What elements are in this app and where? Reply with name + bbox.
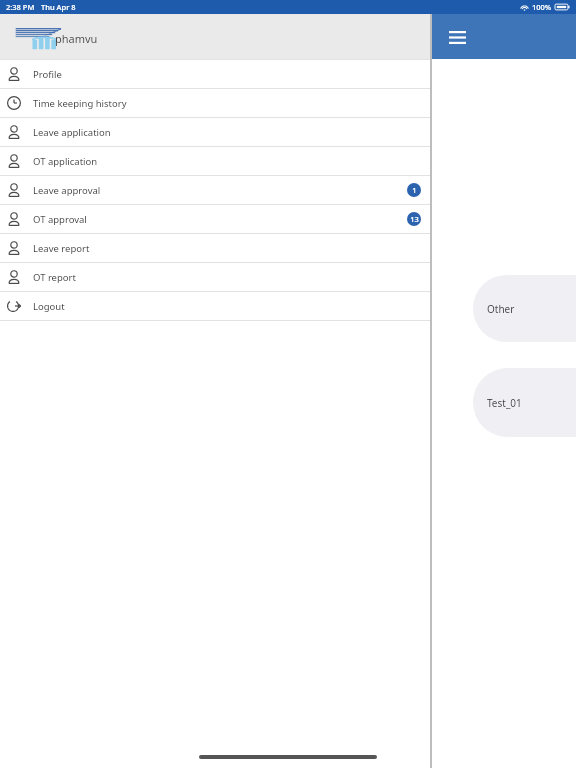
staticText: 1 — [412, 185, 417, 195]
staticText: Profile — [33, 68, 62, 81]
staticText: OT report — [33, 271, 76, 284]
button[interactable]: OT report — [0, 263, 432, 291]
staticText: 100% — [532, 2, 552, 12]
button[interactable]: OT application — [0, 147, 432, 175]
staticText: Leave application — [33, 126, 111, 139]
button[interactable]: Open navigation menu — [444, 24, 470, 50]
staticText: Other — [487, 302, 515, 316]
button[interactable]: Profile — [0, 60, 432, 88]
staticText: Test_01 — [487, 396, 522, 410]
button[interactable]: Test_01 — [473, 368, 576, 437]
staticText: OT approval — [33, 213, 87, 226]
button[interactable]: Other — [473, 275, 576, 342]
staticText: 13 — [410, 214, 419, 224]
staticText: Leave approval — [33, 184, 101, 197]
staticText: 2:38 PM — [6, 2, 35, 12]
button[interactable]: Logout — [0, 292, 432, 320]
button[interactable]: Leave application — [0, 118, 432, 146]
button[interactable]: Leave approval — [0, 176, 432, 204]
staticText: OT application — [33, 155, 98, 168]
staticText: Time keeping history — [33, 97, 127, 110]
staticText: Leave report — [33, 242, 90, 255]
staticText: Thu Apr 8 — [41, 2, 76, 12]
button[interactable]: Time keeping history — [0, 89, 432, 117]
button[interactable]: OT approval — [0, 205, 432, 233]
staticText: Logout — [33, 300, 65, 313]
button[interactable]: Leave report — [0, 234, 432, 262]
staticText: phamvu — [55, 31, 98, 46]
